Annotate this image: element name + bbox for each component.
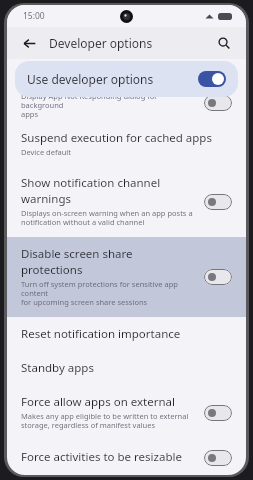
staticText: Force allow apps on external [21, 394, 175, 410]
button[interactable]: Disable screen share protections [7, 237, 246, 317]
staticText: Standby apps [21, 360, 94, 376]
button[interactable]: Suspend execution for cached apps [7, 121, 246, 166]
staticText: Makes any app eligible to be written to … [21, 411, 189, 431]
staticText: 15:00 [23, 10, 45, 22]
button[interactable]: Toggle on [198, 71, 226, 87]
button[interactable]: Toggle off [204, 405, 232, 421]
staticText: Suspend execution for cached apps [21, 130, 212, 146]
staticText: Force activities to be resizable [21, 449, 182, 465]
button[interactable]: Toggle off [204, 450, 232, 466]
staticText: Use developer options [27, 71, 198, 87]
button[interactable]: Reset notification importance [7, 317, 246, 351]
staticText: Reset notification importance [21, 326, 181, 342]
button[interactable]: Toggle off [204, 269, 232, 285]
button[interactable]: Back [17, 31, 41, 55]
staticText: Turn off system protections for sensitiv… [21, 279, 196, 308]
button[interactable]: Standby apps [7, 351, 246, 385]
button[interactable]: Toggle off [204, 95, 232, 111]
staticText: Developer options [49, 35, 212, 51]
staticText: Show notification channel warnings [21, 175, 196, 207]
button[interactable]: Force activities to be resizable [7, 440, 246, 475]
staticText: Displays on-screen warning when an app p… [21, 208, 193, 228]
staticText: Disable screen share protections [21, 246, 196, 278]
button[interactable]: Display App Not Responding dialog for ba… [7, 89, 246, 121]
button[interactable]: Show notification channel warnings [7, 166, 246, 237]
staticText: Device default [21, 147, 71, 157]
staticText: Display App Not Responding dialog for ba… [21, 91, 196, 119]
button[interactable]: Use developer options [15, 61, 238, 97]
button[interactable]: Toggle off [204, 194, 232, 210]
button[interactable]: Force allow apps on external [7, 385, 246, 440]
button[interactable]: Search [212, 31, 236, 55]
